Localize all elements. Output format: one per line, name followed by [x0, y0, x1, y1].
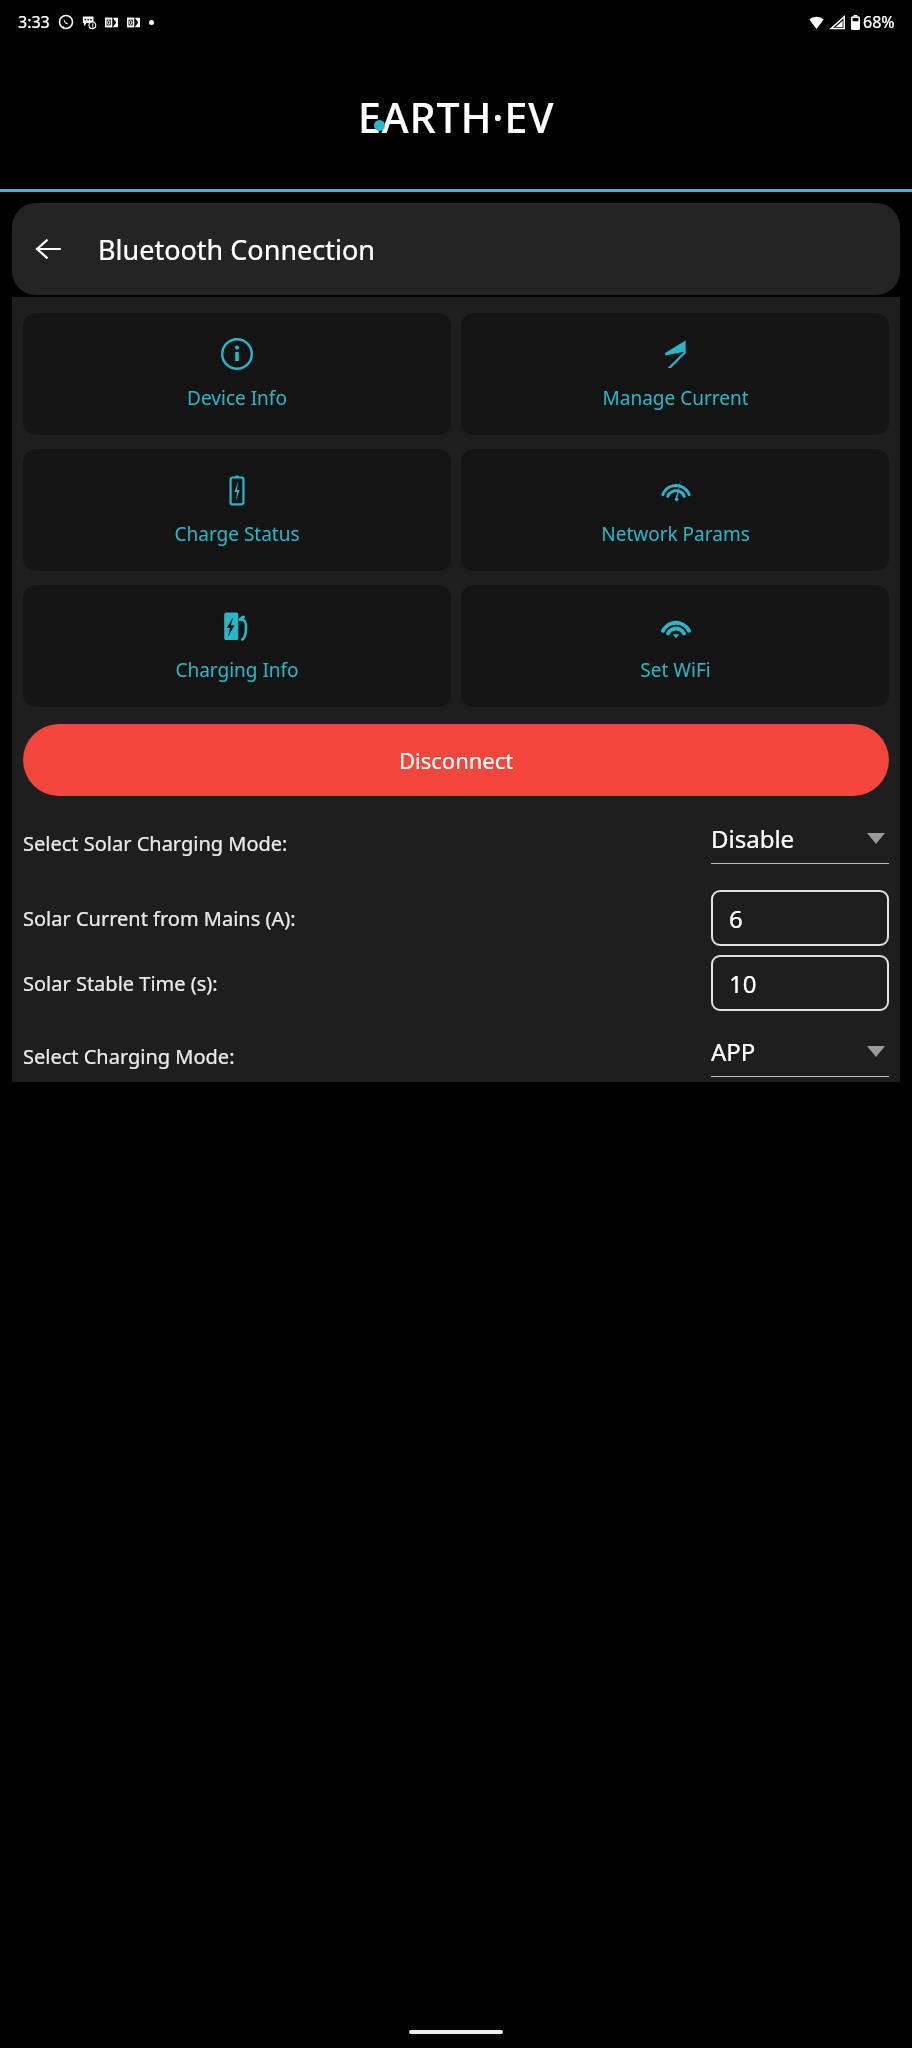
- staticText: EARTH·EV: [358, 89, 555, 145]
- staticText: 3:33: [18, 11, 50, 33]
- button[interactable]: Disable: [711, 822, 889, 864]
- staticText: Select Solar Charging Mode:: [23, 830, 711, 857]
- staticText: 68%: [863, 11, 895, 33]
- button[interactable]: 10: [711, 955, 889, 1011]
- staticText: 6: [729, 902, 743, 935]
- staticText: Solar Stable Time (s):: [23, 970, 711, 997]
- button[interactable]: Network Params: [461, 449, 889, 571]
- button[interactable]: Charge Status: [23, 449, 451, 571]
- staticText: Set WiFi: [640, 657, 711, 683]
- staticText: APP: [711, 1035, 867, 1068]
- staticText: Network Params: [601, 521, 750, 547]
- staticText: Charge Status: [174, 521, 300, 547]
- staticText: Disconnect: [399, 745, 514, 775]
- staticText: Disable: [711, 822, 867, 855]
- button[interactable]: Back: [22, 223, 74, 275]
- staticText: 10: [729, 967, 757, 1000]
- staticText: Bluetooth Connection: [98, 231, 375, 268]
- button[interactable]: 6: [711, 890, 889, 946]
- staticText: Manage Current: [602, 385, 749, 411]
- staticText: Device Info: [187, 385, 287, 411]
- staticText: Charging Info: [175, 657, 299, 683]
- button[interactable]: APP: [711, 1035, 889, 1077]
- button[interactable]: Device Info: [23, 313, 451, 435]
- button[interactable]: Set WiFi: [461, 585, 889, 707]
- staticText: Solar Current from Mains (A):: [23, 905, 711, 932]
- button[interactable]: Manage Current: [461, 313, 889, 435]
- staticText: Select Charging Mode:: [23, 1043, 711, 1070]
- button[interactable]: Disconnect: [23, 724, 889, 796]
- button[interactable]: Charging Info: [23, 585, 451, 707]
